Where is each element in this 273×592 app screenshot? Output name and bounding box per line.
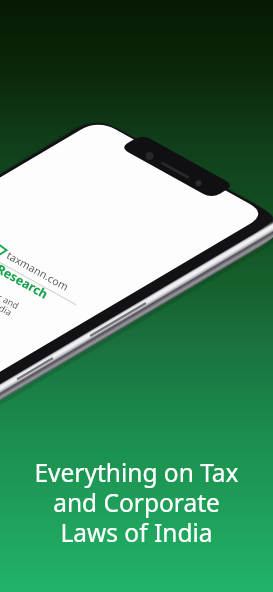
staticText: Everything on Tax and Corporate Laws of … xyxy=(34,456,239,549)
